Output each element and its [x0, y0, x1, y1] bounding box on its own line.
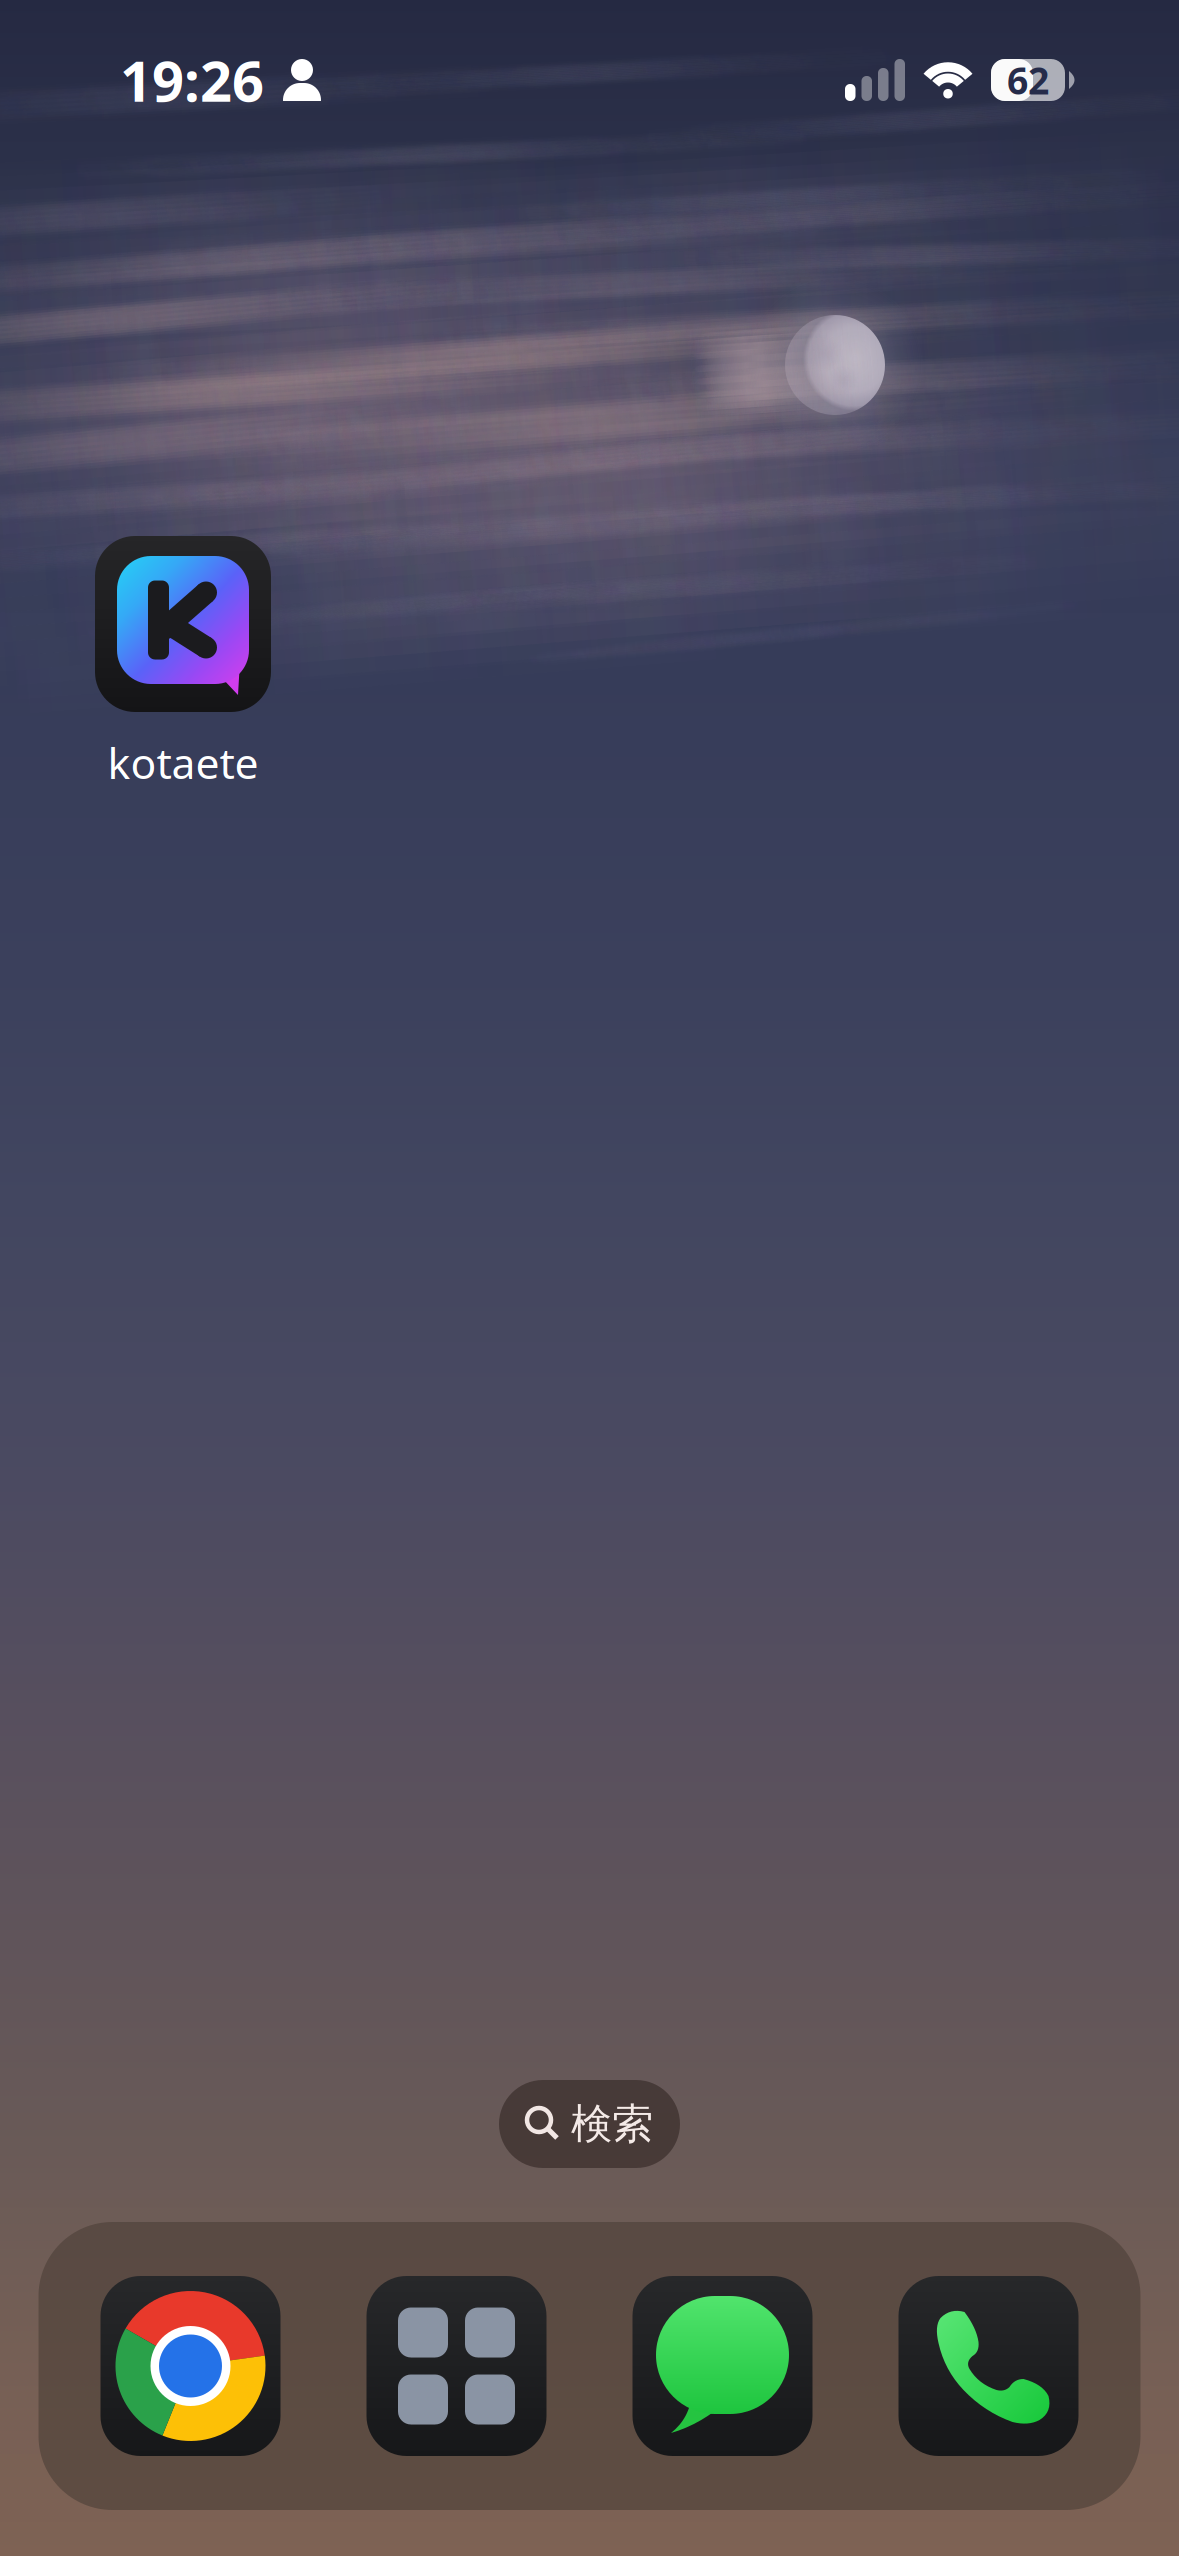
staticText: 62 — [1007, 55, 1049, 105]
staticText: 19:26 — [120, 43, 264, 117]
staticText: 検索 — [571, 2099, 653, 2149]
button[interactable]: App Library — [366, 2276, 546, 2456]
button[interactable]: Phone — [898, 2276, 1078, 2456]
button[interactable]: 検索 — [499, 2080, 680, 2168]
staticText: kotaete — [107, 734, 258, 791]
button[interactable]: Messages — [632, 2276, 812, 2456]
button[interactable]: kotaete — [49, 536, 317, 791]
button[interactable]: Chrome — [100, 2276, 280, 2456]
